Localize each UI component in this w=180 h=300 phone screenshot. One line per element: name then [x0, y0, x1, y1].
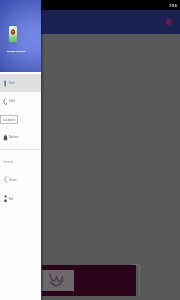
button[interactable]: Record: [163, 15, 175, 29]
button[interactable]: [42, 265, 136, 296]
staticText: Me: [9, 197, 14, 201]
staticText: Free: [9, 81, 15, 85]
staticText: General: [3, 160, 13, 164]
button[interactable]: Locations: [0, 110, 41, 128]
button[interactable]: Calls: [0, 92, 41, 110]
staticText: Battery: [9, 135, 19, 139]
staticText: Share: [9, 178, 17, 182]
button[interactable]: Battery: [0, 128, 41, 146]
button[interactable]: Me: [0, 189, 41, 208]
staticText: Change Location: [7, 50, 26, 53]
staticText: Calls: [9, 99, 16, 103]
button[interactable]: Share: [0, 170, 41, 189]
button[interactable]: Free: [0, 74, 41, 92]
staticText: 7:56: [169, 3, 177, 8]
staticText: Locations: [3, 118, 16, 122]
